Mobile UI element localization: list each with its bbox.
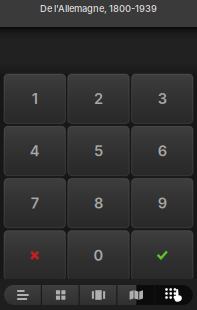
staticText: 6 [158, 142, 167, 160]
button[interactable]: 7 [4, 178, 65, 228]
staticText: 2 [94, 90, 103, 108]
button[interactable]: Confirm [131, 231, 193, 280]
button[interactable]: Cover flow [80, 285, 117, 305]
staticText: 5 [94, 142, 103, 160]
button[interactable]: 8 [68, 178, 129, 228]
button[interactable]: 0 [68, 231, 129, 280]
staticText: 9 [158, 194, 167, 212]
staticText: 4 [30, 142, 40, 160]
button[interactable]: 3 [131, 74, 193, 123]
button[interactable]: 4 [4, 126, 65, 176]
button[interactable]: 5 [68, 126, 129, 176]
staticText: 0 [93, 246, 103, 264]
staticText: De l'Allemagne, 1800-1939 [40, 3, 157, 14]
button[interactable]: Grid [42, 285, 80, 305]
button[interactable]: 6 [131, 126, 193, 176]
button[interactable]: 1 [4, 74, 65, 123]
button[interactable]: List [4, 285, 42, 305]
staticText: 7 [31, 194, 39, 212]
button[interactable]: 2 [68, 74, 129, 123]
button[interactable]: Clear [4, 231, 65, 280]
staticText: 3 [158, 90, 167, 108]
staticText: 8 [94, 194, 103, 212]
button[interactable]: Map [117, 285, 155, 305]
button[interactable]: 9 [131, 178, 193, 228]
staticText: 1 [32, 90, 38, 108]
button[interactable]: Keypad [155, 285, 193, 305]
